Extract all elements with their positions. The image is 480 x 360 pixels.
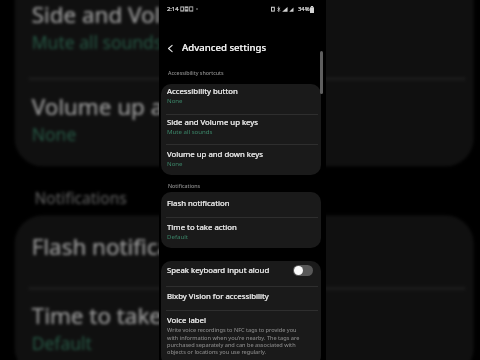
button[interactable]: Speak keyboard input aloud toggle [293, 265, 313, 276]
staticText: Bixby Vision for accessibility [167, 291, 269, 302]
button[interactable]: Flash notification [32, 232, 382, 264]
button[interactable]: Time to take action [32, 301, 382, 360]
button[interactable]: Time to take action [167, 222, 289, 243]
staticText: Side and Volume up keys [167, 117, 259, 128]
staticText: Accessibility button [167, 86, 238, 97]
button[interactable]: Side and Volume up keys [167, 117, 289, 138]
staticText: Mute all sounds [167, 127, 213, 135]
staticText: Accessibility shortcuts [168, 69, 224, 76]
staticText: Write voice recordings to NFC tags to pr… [167, 326, 307, 355]
staticText: Flash notification [32, 232, 213, 264]
staticText: None [167, 96, 183, 104]
staticText: Mute all sounds [32, 29, 164, 52]
staticText: Default [32, 330, 92, 353]
button[interactable]: Volume up and down keys [32, 92, 382, 152]
button[interactable]: Flash notification [167, 198, 289, 209]
button[interactable]: Navigate up [162, 40, 179, 57]
staticText: Flash notification [167, 198, 230, 209]
staticText: Default [167, 232, 188, 240]
staticText: None [32, 120, 78, 143]
staticText: Volume up and down keys [167, 149, 263, 160]
staticText: Time to take action [32, 301, 233, 333]
staticText: Advanced settings [182, 41, 267, 54]
button[interactable]: Bixby Vision for accessibility [167, 291, 289, 302]
staticText: Notifications [35, 186, 129, 207]
staticText: Volume up and down keys [32, 92, 307, 123]
button[interactable]: Accessibility button [167, 86, 289, 107]
staticText: None [167, 159, 183, 167]
staticText: Voice label [167, 315, 207, 326]
staticText: Speak keyboard input aloud [167, 265, 270, 276]
button[interactable]: Volume up and down keys [167, 149, 289, 170]
staticText: 34% [298, 5, 310, 13]
button[interactable]: Voice label [167, 315, 307, 355]
staticText: Side and Volume up keys [32, 0, 296, 31]
staticText: Notifications [168, 182, 201, 189]
staticText: Time to take action [167, 222, 237, 233]
button[interactable]: Speak keyboard input aloud [167, 265, 289, 276]
button[interactable]: Side and Volume up keys [32, 0, 382, 60]
staticText: 2:14 [167, 5, 179, 13]
